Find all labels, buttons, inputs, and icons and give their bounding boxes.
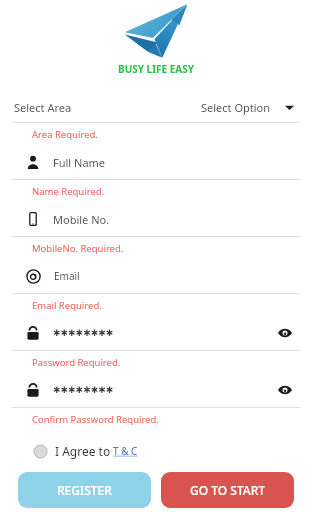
staticText: Name Required. (32, 185, 105, 198)
staticText: REGISTER (57, 482, 112, 498)
button[interactable]: REGISTER (18, 472, 151, 508)
staticText: Mobile No. (53, 212, 110, 227)
button[interactable]: T & C (113, 444, 138, 458)
staticText: MobileNo. Required. (32, 242, 124, 255)
staticText: Email Required. (32, 299, 102, 312)
staticText: Full Name (53, 155, 106, 170)
button[interactable]: Show password (278, 383, 292, 397)
staticText: ✱✱✱✱✱✱✱✱ (53, 385, 114, 395)
button[interactable]: I Agree to (34, 438, 138, 464)
staticText: Email (54, 269, 80, 283)
button[interactable]: Show password (278, 326, 292, 340)
staticText: ✱✱✱✱✱✱✱✱ (53, 328, 114, 338)
button[interactable]: GO TO START (161, 472, 294, 508)
staticText: Area Required. (32, 128, 98, 141)
button[interactable]: Select Area (0, 92, 312, 122)
button[interactable]: ✱✱✱✱✱✱✱✱ (0, 316, 312, 350)
staticText: Select Option (201, 100, 271, 115)
button[interactable]: Full Name (0, 145, 312, 179)
staticText: Confirm Password Required. (32, 413, 159, 426)
staticText: GO TO START (190, 482, 265, 498)
button[interactable]: Email (0, 259, 312, 293)
staticText: Password Required. (32, 356, 121, 369)
button[interactable]: ✱✱✱✱✱✱✱✱ (0, 373, 312, 407)
staticText: I Agree to (55, 443, 111, 459)
staticText: Select Area (14, 100, 72, 115)
button[interactable]: Mobile No. (0, 202, 312, 236)
staticText: BUSY LIFE EASY (118, 62, 195, 76)
